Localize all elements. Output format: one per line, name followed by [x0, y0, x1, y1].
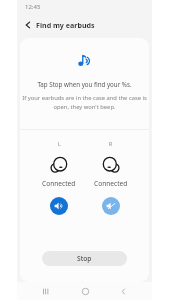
staticText: Tap Stop when you find your %s.: [37, 80, 132, 88]
button[interactable]: Recents: [38, 284, 52, 298]
button[interactable]: Mute earbud: [50, 197, 68, 215]
button[interactable]: Navigate up: [22, 19, 34, 31]
staticText: Find my earbuds: [36, 20, 95, 30]
staticText: Stop: [77, 254, 92, 263]
staticText: Connected: [94, 179, 128, 188]
staticText: R: [109, 141, 113, 148]
button[interactable]: Home: [78, 284, 92, 298]
staticText: Connected: [42, 179, 76, 188]
staticText: If your earbuds are in the case and the …: [22, 94, 147, 110]
staticText: L: [58, 141, 61, 148]
button[interactable]: Unmute earbud: [102, 197, 120, 215]
button[interactable]: Back: [116, 284, 130, 298]
button[interactable]: Stop: [42, 251, 127, 266]
staticText: 12:45: [25, 3, 41, 11]
